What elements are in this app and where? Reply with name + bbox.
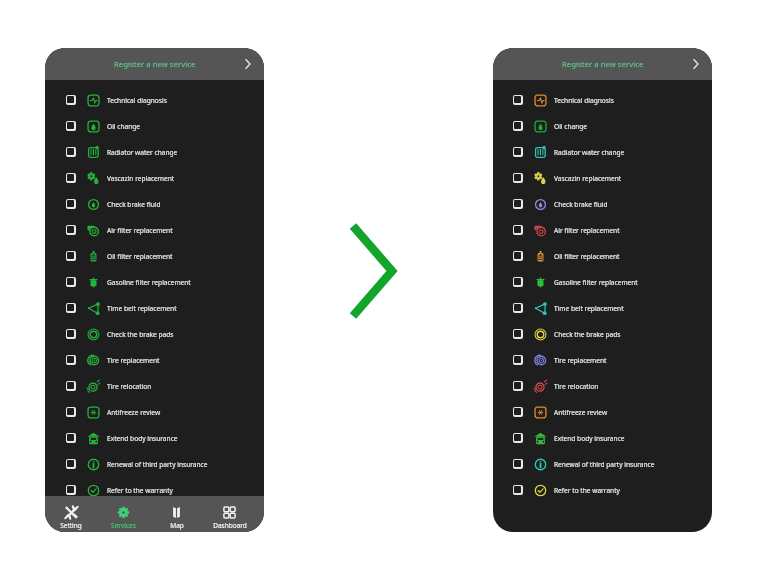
staticText: Extend body insurance: [554, 434, 625, 443]
button[interactable]: Refer to the warranty: [45, 477, 264, 503]
button[interactable]: Vascazin replacement: [45, 165, 264, 191]
button[interactable]: Tire relocation: [493, 373, 712, 399]
button[interactable]: Setting: [45, 499, 97, 530]
staticText: Renewal of third party insurance: [107, 460, 208, 469]
staticText: Air filter replacement: [554, 226, 620, 235]
staticText: Register a new service: [562, 59, 644, 70]
staticText: Map: [170, 521, 184, 530]
button[interactable]: Extend body insurance: [493, 425, 712, 451]
staticText: Vascazin replacement: [107, 174, 175, 183]
staticText: Vascazin replacement: [554, 174, 622, 183]
button[interactable]: Oil change: [493, 113, 712, 139]
staticText: Gasoline filter replacement: [554, 278, 638, 287]
button[interactable]: Technical diagnosis: [493, 87, 712, 113]
button[interactable]: Antifreeze review: [493, 399, 712, 425]
button[interactable]: Oil change: [45, 113, 264, 139]
staticText: Tire replacement: [554, 356, 607, 365]
button[interactable]: Renewal of third party insurance: [45, 451, 264, 477]
button[interactable]: Gasoline filter replacement: [45, 269, 264, 295]
staticText: Oil filter replacement: [107, 252, 173, 261]
button[interactable]: Gasoline filter replacement: [493, 269, 712, 295]
button[interactable]: Register a new service: [493, 48, 712, 80]
staticText: Antifreeze review: [554, 408, 608, 417]
staticText: Technical diagnosis: [107, 96, 167, 105]
staticText: Tire relocation: [107, 382, 152, 391]
button[interactable]: Time belt replacement: [493, 295, 712, 321]
staticText: Technical diagnosis: [554, 96, 614, 105]
staticText: Time belt replacement: [107, 304, 177, 313]
button[interactable]: Check the brake pads: [493, 321, 712, 347]
button[interactable]: Tire relocation: [45, 373, 264, 399]
staticText: Check brake fluid: [107, 200, 161, 209]
staticText: Air filter replacement: [107, 226, 173, 235]
button[interactable]: Register a new service: [45, 48, 264, 80]
staticText: Check the brake pads: [554, 330, 621, 339]
staticText: Check the brake pads: [107, 330, 174, 339]
staticText: Tire replacement: [107, 356, 160, 365]
button[interactable]: Air filter replacement: [45, 217, 264, 243]
staticText: Time belt replacement: [554, 304, 624, 313]
button[interactable]: Check brake fluid: [493, 191, 712, 217]
button[interactable]: Refer to the warranty: [493, 477, 712, 503]
button[interactable]: Extend body insurance: [45, 425, 264, 451]
button[interactable]: Tire replacement: [45, 347, 264, 373]
button[interactable]: Renewal of third party insurance: [493, 451, 712, 477]
button[interactable]: Tire replacement: [493, 347, 712, 373]
staticText: Extend body insurance: [107, 434, 178, 443]
button[interactable]: Technical diagnosis: [45, 87, 264, 113]
staticText: Antifreeze review: [107, 408, 161, 417]
staticText: Tire relocation: [554, 382, 599, 391]
button[interactable]: Air filter replacement: [493, 217, 712, 243]
staticText: Oil filter replacement: [554, 252, 620, 261]
staticText: Check brake fluid: [554, 200, 608, 209]
staticText: Radiator water change: [107, 148, 178, 157]
staticText: Oil change: [554, 122, 588, 131]
staticText: Renewal of third party insurance: [554, 460, 655, 469]
staticText: Gasoline filter replacement: [107, 278, 191, 287]
button[interactable]: Radiator water change: [45, 139, 264, 165]
staticText: Services: [111, 521, 136, 530]
staticText: Oil change: [107, 122, 141, 131]
staticText: Setting: [60, 521, 82, 530]
button[interactable]: Oil filter replacement: [45, 243, 264, 269]
button[interactable]: Time belt replacement: [45, 295, 264, 321]
staticText: Dashboard: [213, 521, 247, 530]
staticText: Radiator water change: [554, 148, 625, 157]
staticText: Register a new service: [114, 59, 196, 70]
staticText: Refer to the warranty: [107, 486, 173, 495]
button[interactable]: Antifreeze review: [45, 399, 264, 425]
button[interactable]: Vascazin replacement: [493, 165, 712, 191]
button[interactable]: Oil filter replacement: [493, 243, 712, 269]
button[interactable]: Services: [97, 499, 150, 530]
button[interactable]: Radiator water change: [493, 139, 712, 165]
button[interactable]: Check brake fluid: [45, 191, 264, 217]
button[interactable]: Dashboard: [203, 499, 256, 530]
button[interactable]: Map: [150, 499, 203, 530]
staticText: Refer to the warranty: [554, 486, 620, 495]
button[interactable]: Check the brake pads: [45, 321, 264, 347]
